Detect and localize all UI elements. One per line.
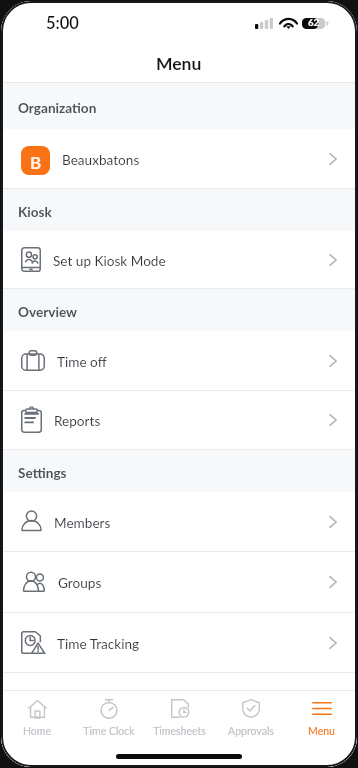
other: Time Clock (100, 699, 118, 718)
staticText: Settings (18, 465, 67, 481)
staticText: Menu (156, 53, 202, 74)
button[interactable]: Reports (1, 391, 357, 449)
staticText: Home (23, 725, 51, 738)
other: Home (28, 700, 47, 718)
staticText: 5:00 (46, 13, 79, 33)
staticText: Set up Kiosk Mode (53, 253, 329, 269)
staticText: Menu (308, 725, 335, 738)
button[interactable]: Time off (1, 331, 357, 390)
staticText: Overview (18, 304, 77, 320)
staticText: Time off (57, 354, 329, 370)
other: Timesheets (171, 699, 189, 718)
button[interactable]: Groups (1, 552, 357, 612)
button[interactable]: Timesheets (144, 691, 215, 746)
other: Approvals (242, 699, 260, 718)
staticText: Groups (58, 575, 329, 591)
staticText: Members (54, 515, 329, 531)
button[interactable]: Menu (286, 691, 357, 746)
button[interactable]: Home (1, 691, 73, 746)
staticText: Organization (18, 100, 97, 116)
staticText: Time Clock (83, 725, 135, 738)
button[interactable]: Members (1, 492, 357, 551)
button[interactable]: B (1, 129, 357, 188)
staticText: Time Tracking (57, 636, 329, 652)
staticText: 62 (308, 17, 320, 29)
other: Menu (312, 702, 332, 715)
staticText: Reports (54, 413, 329, 429)
staticText: Approvals (228, 725, 274, 738)
staticText: B (30, 152, 42, 172)
staticText: Timesheets (153, 725, 206, 738)
button[interactable]: Time Tracking (1, 613, 357, 672)
button[interactable]: Set up Kiosk Mode (1, 231, 357, 288)
button[interactable]: Time Clock (73, 691, 144, 746)
staticText: Beauxbatons (62, 152, 329, 168)
staticText: Kiosk (18, 204, 52, 220)
button[interactable]: Approvals (215, 691, 286, 746)
